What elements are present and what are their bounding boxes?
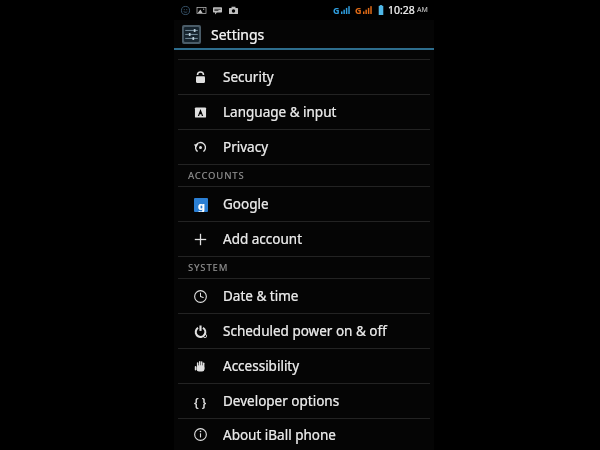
staticText: Google [223, 195, 269, 213]
staticText: SYSTEM [188, 261, 229, 274]
button[interactable]: Date & time [174, 279, 434, 313]
button[interactable]: Language & input [174, 95, 434, 129]
button[interactable]: g [174, 187, 434, 221]
button[interactable]: Settings [174, 20, 434, 48]
button[interactable]: { } [174, 384, 434, 418]
staticText: g [198, 198, 205, 212]
staticText: Privacy [223, 138, 269, 156]
staticText: Date & time [223, 287, 299, 305]
staticText: G [355, 4, 362, 16]
staticText: 10:28 [388, 3, 415, 17]
staticText: { } [194, 394, 207, 410]
button[interactable]: About iBall phone [174, 419, 434, 450]
staticText: Scheduled power on & off [223, 322, 387, 340]
staticText: Language & input [223, 103, 337, 121]
button[interactable]: Accessibility [174, 349, 434, 383]
staticText: Security [223, 68, 274, 86]
button[interactable]: Add account [174, 222, 434, 256]
staticText: AM [417, 5, 428, 15]
staticText: Accessibility [223, 357, 300, 375]
staticText: Settings [211, 25, 265, 44]
staticText: ACCOUNTS [188, 169, 245, 182]
staticText: About iBall phone [223, 426, 336, 444]
staticText: G [333, 4, 340, 16]
button[interactable]: Security [174, 60, 434, 94]
button[interactable]: Privacy [174, 130, 434, 164]
staticText: Developer options [223, 392, 340, 410]
staticText: Add account [223, 230, 303, 248]
button[interactable]: Scheduled power on & off [174, 314, 434, 348]
